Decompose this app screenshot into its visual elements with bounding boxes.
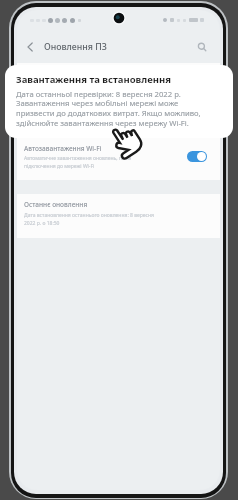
button[interactable]: Back xyxy=(17,34,43,60)
staticText: Оновлення ПЗ xyxy=(44,41,107,53)
staticText: Завантаження та встановлення xyxy=(16,73,171,86)
button[interactable]: Останнє оновлення xyxy=(17,194,220,238)
staticText: Автозавантаження Wi-Fi xyxy=(24,144,102,153)
staticText: Дата останньої перевірки: 8 вересня 2022… xyxy=(16,89,201,129)
staticText: Дата встановлення останнього оновлення: … xyxy=(24,212,154,226)
staticText: Останнє оновлення xyxy=(24,200,88,209)
button[interactable]: Автозавантаження Wi-Fi xyxy=(17,63,220,180)
staticText: Автоматичне завантаження оновлень, після… xyxy=(24,155,132,169)
button[interactable]: Search xyxy=(189,34,215,60)
